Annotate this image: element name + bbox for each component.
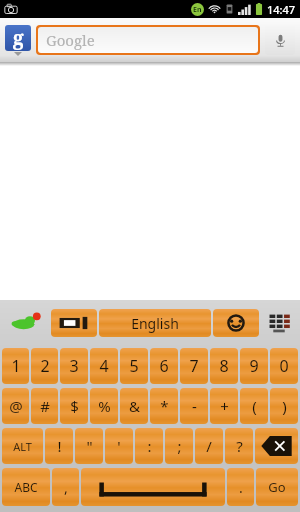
button[interactable]: ; xyxy=(165,428,193,464)
button[interactable]: 2 xyxy=(31,348,58,384)
staticText: Go xyxy=(268,478,286,496)
button[interactable]: Space xyxy=(81,468,225,506)
button[interactable]: ABC xyxy=(2,468,50,506)
button[interactable]: Emoji xyxy=(213,309,259,337)
staticText: 9 xyxy=(249,355,259,377)
staticText: Google xyxy=(46,30,95,50)
button[interactable]: % xyxy=(90,388,118,424)
staticText: $ xyxy=(70,396,79,416)
staticText: + xyxy=(220,396,229,416)
staticText: ALT xyxy=(13,439,32,454)
button[interactable]: * xyxy=(150,388,178,424)
staticText: ' xyxy=(117,436,121,456)
staticText: " xyxy=(86,436,93,456)
button[interactable]: GO Keyboard settings xyxy=(2,300,50,346)
staticText: 7 xyxy=(189,355,199,377)
staticText: , xyxy=(64,478,68,497)
staticText: 14:47 xyxy=(267,2,296,17)
staticText: * xyxy=(160,396,169,416)
button[interactable]: 9 xyxy=(240,348,268,384)
button[interactable]: 8 xyxy=(210,348,238,384)
staticText: . xyxy=(239,478,243,497)
button[interactable]: . xyxy=(227,468,254,506)
button[interactable]: 1 xyxy=(2,348,29,384)
staticText: English xyxy=(131,314,179,333)
staticText: 1 xyxy=(11,355,21,377)
staticText: ! xyxy=(57,436,62,456)
button[interactable]: # xyxy=(31,388,58,424)
button[interactable]: 7 xyxy=(180,348,208,384)
staticText: ) xyxy=(282,396,287,416)
staticText: % xyxy=(98,396,111,416)
button[interactable]: English xyxy=(99,309,211,337)
button[interactable]: ( xyxy=(240,388,268,424)
button[interactable]: : xyxy=(135,428,163,464)
button[interactable]: $ xyxy=(60,388,88,424)
staticText: @ xyxy=(9,396,23,416)
button[interactable]: Google xyxy=(38,27,258,53)
button[interactable]: 3 xyxy=(60,348,88,384)
staticText: 5 xyxy=(129,355,139,377)
button[interactable]: / xyxy=(195,428,223,464)
button[interactable]: - xyxy=(180,388,208,424)
button[interactable]: Backspace xyxy=(255,428,298,464)
staticText: ; xyxy=(177,436,182,456)
staticText: 3 xyxy=(69,355,79,377)
button[interactable]: 0 xyxy=(270,348,298,384)
staticText: ? xyxy=(236,436,243,456)
staticText: 6 xyxy=(159,355,169,377)
staticText: 4 xyxy=(99,355,109,377)
staticText: En xyxy=(193,5,202,15)
button[interactable]: 5 xyxy=(120,348,148,384)
staticText: / xyxy=(206,436,212,456)
button[interactable]: ! xyxy=(45,428,73,464)
staticText: - xyxy=(192,396,197,416)
staticText: : xyxy=(147,436,152,456)
staticText: ABC xyxy=(14,479,38,495)
button[interactable]: " xyxy=(75,428,103,464)
button[interactable]: Keyboard layout xyxy=(260,300,298,346)
button[interactable]: 6 xyxy=(150,348,178,384)
staticText: 0 xyxy=(279,355,289,377)
staticText: g xyxy=(13,25,24,51)
staticText: & xyxy=(129,396,140,416)
button[interactable]: @ xyxy=(2,388,29,424)
button[interactable]: Voice search xyxy=(265,25,295,55)
button[interactable]: 4 xyxy=(90,348,118,384)
button[interactable]: Go xyxy=(256,468,298,506)
button[interactable]: Clipboard xyxy=(51,309,97,337)
button[interactable]: ? xyxy=(225,428,253,464)
staticText: # xyxy=(40,396,50,416)
staticText: ( xyxy=(252,396,257,416)
button[interactable]: + xyxy=(210,388,238,424)
button[interactable]: , xyxy=(52,468,79,506)
button[interactable]: ) xyxy=(270,388,298,424)
button[interactable]: Google search provider xyxy=(5,25,31,51)
button[interactable]: ALT xyxy=(2,428,43,464)
button[interactable]: ' xyxy=(105,428,133,464)
staticText: 8 xyxy=(219,355,229,377)
button[interactable]: & xyxy=(120,388,148,424)
staticText: 2 xyxy=(40,355,50,377)
